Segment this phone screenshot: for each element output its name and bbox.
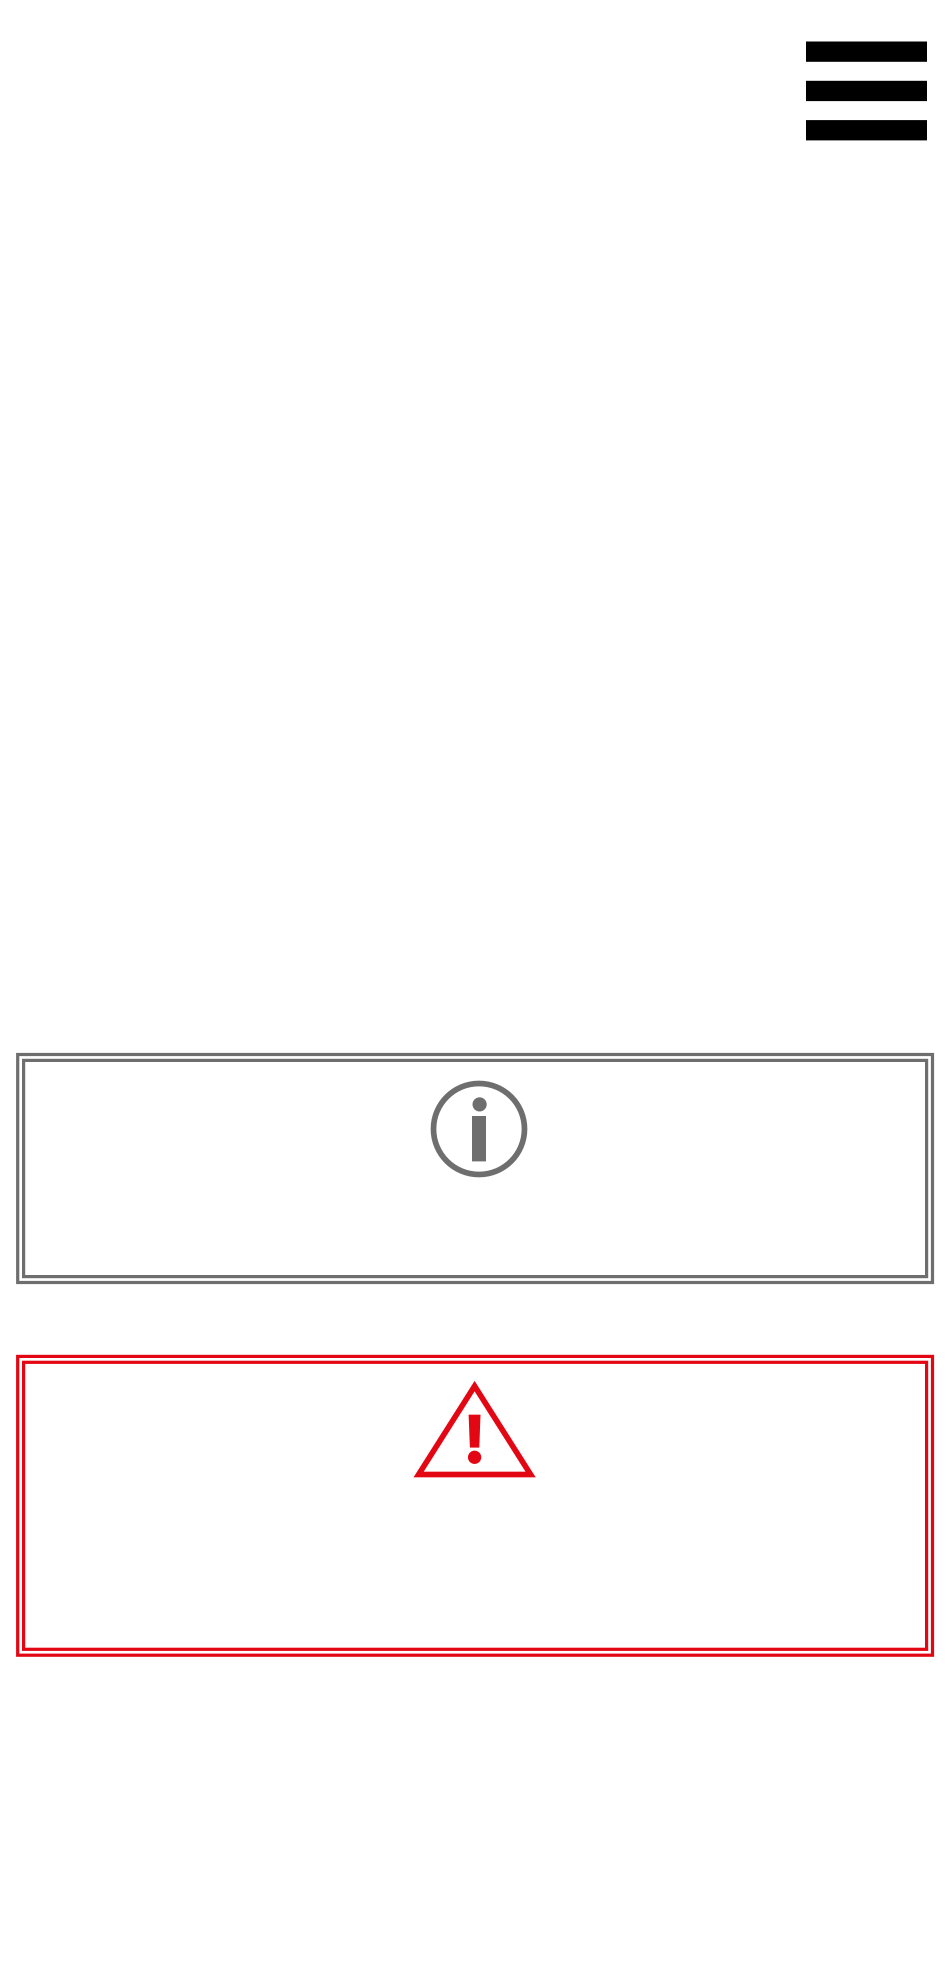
button[interactable]: Menu <box>806 41 927 140</box>
